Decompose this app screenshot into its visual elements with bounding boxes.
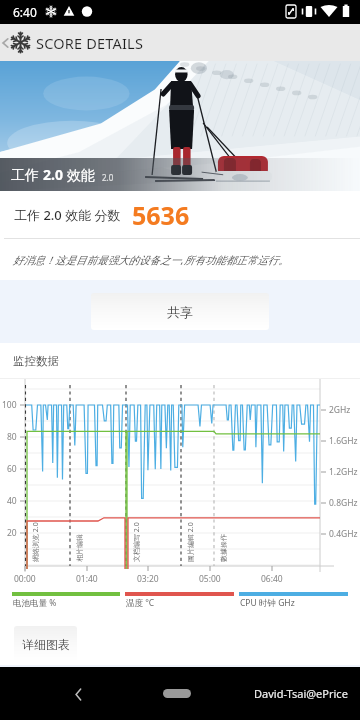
staticText: 5636 xyxy=(132,198,190,232)
staticText: CPU 时钟 GHz xyxy=(240,597,295,609)
staticText: 效能 xyxy=(63,165,95,184)
staticText: David-Tsai@ePrice xyxy=(254,686,348,701)
staticText: SCORE DETAILS xyxy=(36,33,144,53)
staticText: 6:40 xyxy=(13,4,37,20)
staticText: 电池电量 % xyxy=(13,597,57,609)
button[interactable]: 详细图表 xyxy=(14,626,77,662)
staticText: 2.0 xyxy=(102,172,114,183)
staticText: 监控数据 xyxy=(13,354,59,368)
button[interactable]: 共享 xyxy=(91,293,269,330)
button[interactable]: Home xyxy=(163,689,191,698)
staticText: 工作 xyxy=(11,165,43,184)
staticText: 温度 °C xyxy=(126,597,155,609)
staticText: 2.0 xyxy=(43,165,63,184)
staticText: 共享 xyxy=(167,304,193,320)
button[interactable]: Back xyxy=(64,680,92,708)
button[interactable]: Back xyxy=(0,24,10,61)
staticText: 详细图表 xyxy=(22,637,70,652)
staticText: 工作 2.0 效能 分数 xyxy=(14,206,121,224)
staticText: 好消息！这是目前最强大的设备之一,所有功能都正常运行。 xyxy=(13,253,289,267)
